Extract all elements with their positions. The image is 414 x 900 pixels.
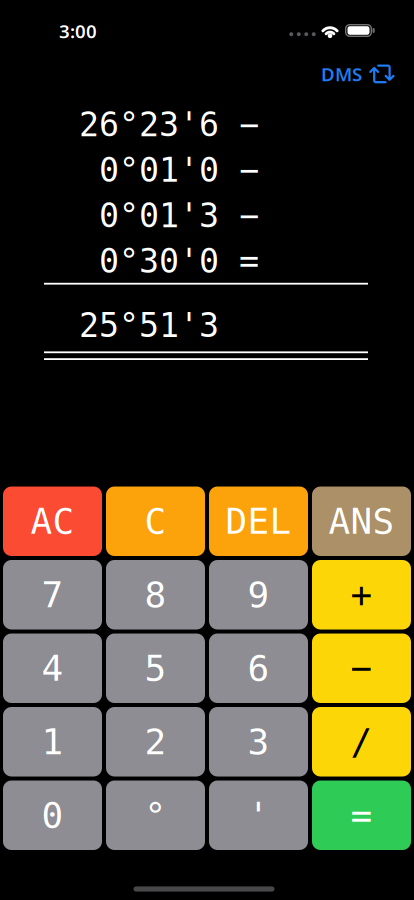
staticText: 26°23'6 −: [79, 106, 259, 144]
staticText: DEL: [225, 501, 291, 542]
staticText: 25°51'3: [79, 307, 219, 344]
button[interactable]: ANS: [312, 486, 411, 556]
button[interactable]: 1: [3, 707, 102, 776]
button[interactable]: 4: [3, 633, 102, 703]
button[interactable]: AC: [3, 486, 102, 556]
staticText: C: [144, 501, 166, 542]
staticText: 3:00: [59, 19, 97, 43]
staticText: 0°01'0 −: [99, 151, 259, 189]
staticText: 0: [41, 795, 63, 836]
staticText: 1: [41, 721, 63, 762]
button[interactable]: DMS: [316, 60, 400, 88]
button[interactable]: DEL: [209, 486, 308, 556]
staticText: ANS: [328, 501, 394, 542]
staticText: 6: [247, 648, 269, 689]
staticText: +: [350, 574, 372, 615]
staticText: 0°01'3 −: [99, 197, 259, 235]
staticText: /: [350, 721, 372, 762]
staticText: 0°30'0 =: [99, 242, 259, 280]
button[interactable]: 7: [3, 560, 102, 629]
button[interactable]: =: [312, 780, 411, 850]
staticText: =: [350, 795, 372, 836]
staticText: AC: [30, 501, 74, 542]
button[interactable]: 9: [209, 560, 308, 629]
button[interactable]: ': [209, 780, 308, 850]
button[interactable]: +: [312, 560, 411, 629]
staticText: °: [144, 795, 166, 836]
staticText: −: [350, 648, 372, 689]
staticText: 9: [247, 574, 269, 615]
button[interactable]: 3: [209, 707, 308, 776]
button[interactable]: °: [106, 780, 205, 850]
button[interactable]: C: [106, 486, 205, 556]
button[interactable]: 0: [3, 780, 102, 850]
staticText: 8: [144, 574, 166, 615]
staticText: DMS: [321, 62, 362, 86]
staticText: 4: [41, 648, 63, 689]
button[interactable]: /: [312, 707, 411, 776]
staticText: 3: [247, 721, 269, 762]
staticText: 7: [41, 574, 63, 615]
button[interactable]: 6: [209, 633, 308, 703]
button[interactable]: 2: [106, 707, 205, 776]
staticText: ': [247, 795, 269, 836]
staticText: 5: [144, 648, 166, 689]
button[interactable]: 5: [106, 633, 205, 703]
button[interactable]: 8: [106, 560, 205, 629]
button[interactable]: −: [312, 633, 411, 703]
staticText: 2: [144, 721, 166, 762]
